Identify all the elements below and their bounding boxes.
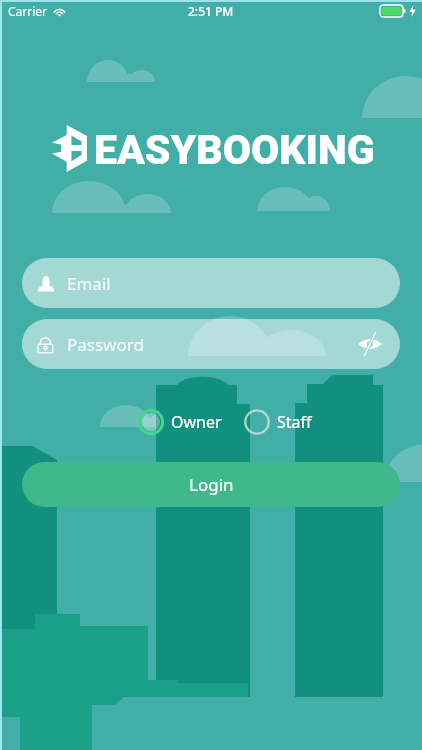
staticText: Staff bbox=[277, 411, 312, 433]
staticText: Carrier bbox=[8, 3, 48, 19]
button[interactable]: Password bbox=[22, 319, 400, 369]
button[interactable]: Staff bbox=[244, 409, 312, 435]
staticText: EASYBOOKING bbox=[94, 126, 375, 174]
button[interactable]: Login bbox=[22, 462, 400, 507]
staticText: Password bbox=[67, 333, 144, 356]
staticText: 2:51 PM bbox=[188, 3, 234, 19]
button[interactable]: Show password bbox=[358, 332, 382, 356]
staticText: Owner bbox=[171, 411, 222, 433]
staticText: Login bbox=[189, 473, 234, 496]
button[interactable]: Owner bbox=[138, 409, 222, 435]
staticText: Email bbox=[67, 272, 111, 295]
button[interactable]: Email bbox=[22, 258, 400, 308]
